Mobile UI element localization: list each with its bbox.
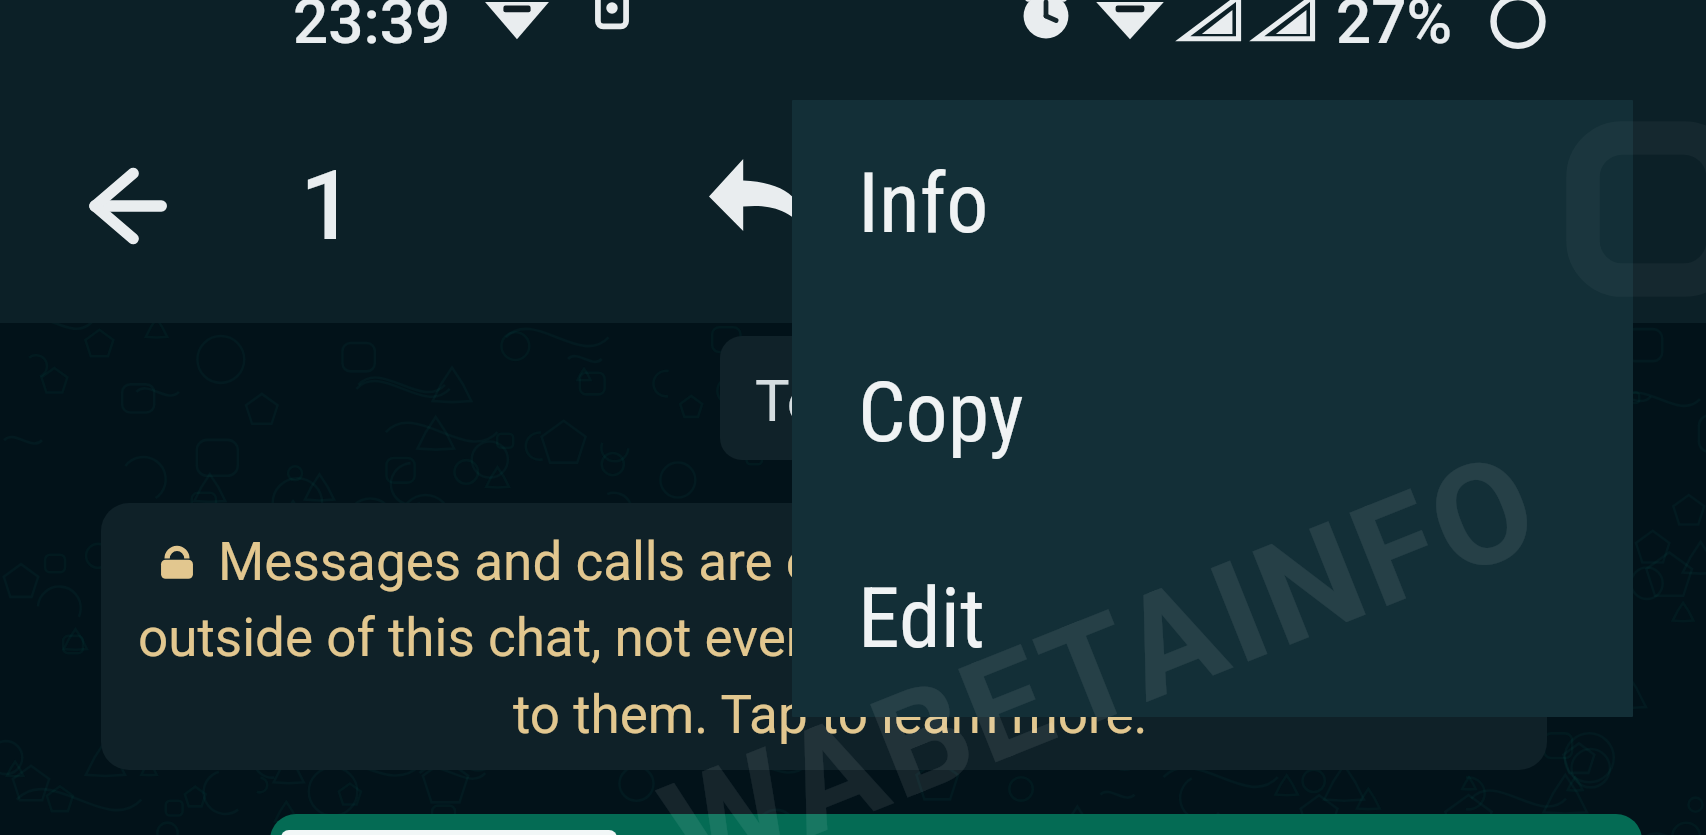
- staticText: Messages and calls are end-to-end: [218, 531, 1037, 593]
- staticText: Edit: [858, 569, 985, 667]
- button[interactable]: Copy: [792, 348, 1633, 476]
- button[interactable]: Messages and calls are end-to-end: [101, 503, 1547, 770]
- button[interactable]: [270, 814, 1642, 835]
- button[interactable]: Reply: [700, 150, 812, 240]
- staticText: 23:39: [293, 0, 451, 45]
- staticText: outside of this chat, not even WhatsApp: [138, 607, 1072, 669]
- staticText: Info: [858, 154, 989, 252]
- button[interactable]: Edit: [792, 554, 1633, 682]
- staticText: Copy: [858, 363, 1024, 461]
- button[interactable]: Info: [792, 139, 1633, 267]
- staticText: 1: [300, 150, 355, 263]
- staticText: Tomorrow: [755, 367, 1020, 435]
- button[interactable]: Back: [76, 155, 178, 257]
- staticText: to them. Tap to learn more.: [513, 684, 1148, 746]
- staticText: WABETAINFO: [641, 419, 1563, 835]
- staticText: 27%: [1336, 0, 1453, 45]
- button[interactable]: Tomorrow: [720, 336, 1150, 460]
